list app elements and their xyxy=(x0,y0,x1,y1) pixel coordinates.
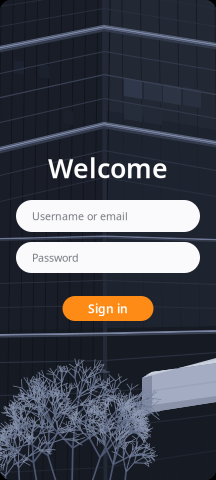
button[interactable]: Sign in xyxy=(62,296,153,321)
staticText: Password xyxy=(32,250,79,265)
staticText: Sign in xyxy=(88,300,128,316)
button[interactable]: Password xyxy=(16,242,200,273)
staticText: Welcome xyxy=(48,150,168,186)
button[interactable]: Username or email xyxy=(16,200,200,232)
staticText: Username or email xyxy=(32,209,128,223)
